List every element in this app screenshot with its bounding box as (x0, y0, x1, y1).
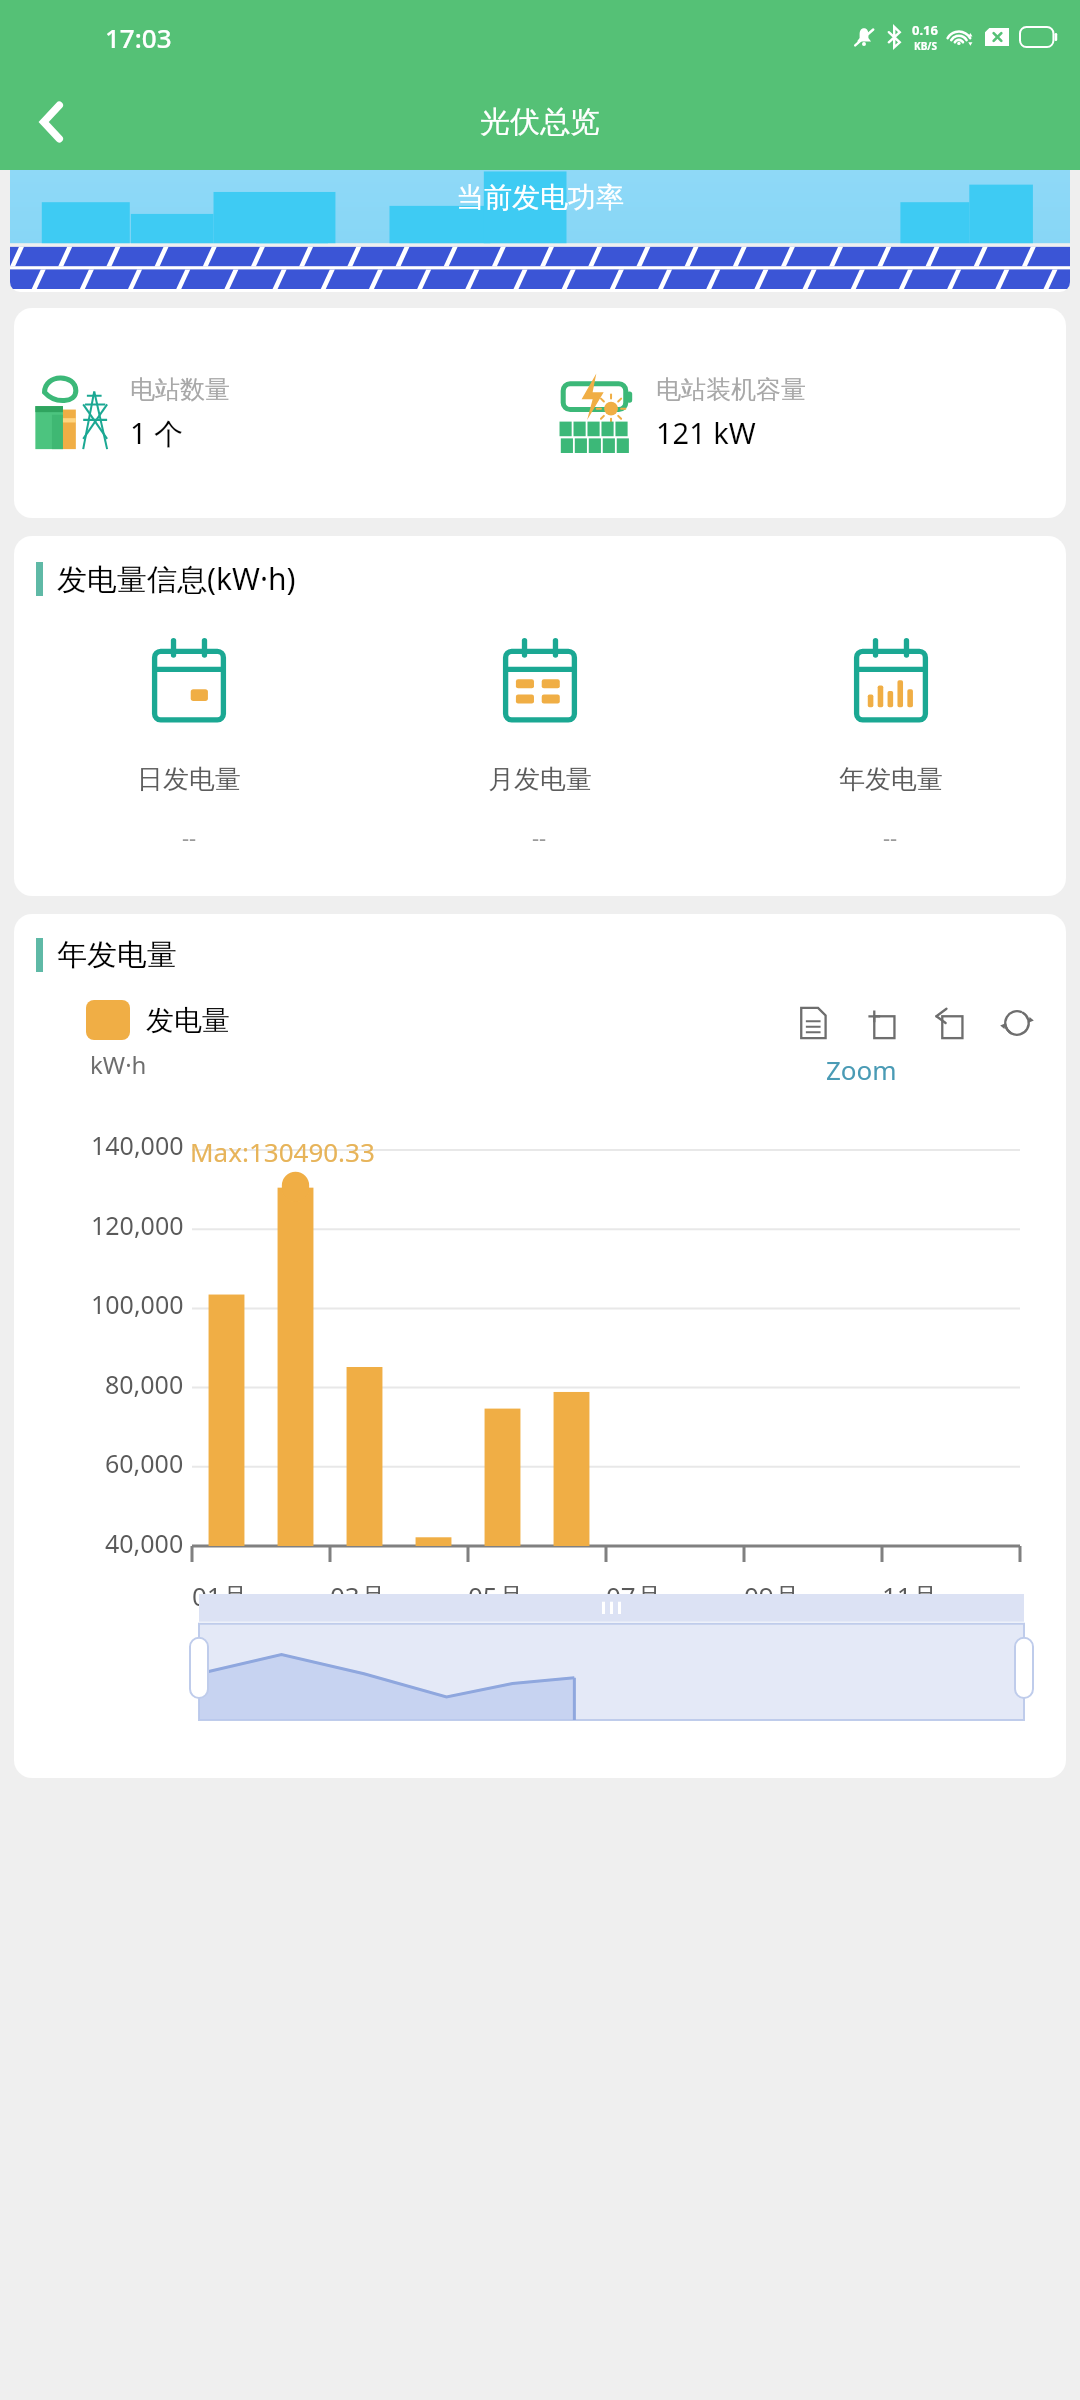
staticText: 年发电量 (839, 763, 943, 796)
staticText: 03月 (330, 1578, 386, 1614)
staticText: 40,000 (105, 1526, 184, 1560)
staticText: 60,000 (105, 1446, 184, 1480)
button[interactable]: Zoom reset (926, 1000, 972, 1046)
button[interactable]: Zoom in (858, 1000, 904, 1046)
staticText: -- (532, 822, 547, 852)
staticText: 发电量 (146, 1003, 230, 1038)
staticText: -- (182, 822, 197, 852)
staticText: Zoom (826, 1052, 897, 1087)
staticText: 07月 (606, 1578, 662, 1614)
staticText: KB/S (914, 39, 937, 53)
staticText: 日发电量 (137, 763, 241, 796)
button[interactable]: 日发电量 (14, 637, 364, 852)
staticText: 05月 (468, 1578, 524, 1614)
staticText: 1 个 (130, 413, 184, 453)
staticText: 0.16 (912, 21, 938, 39)
staticText: 光伏总览 (480, 103, 600, 141)
staticText: 电站装机容量 (656, 374, 806, 405)
staticText: 月发电量 (488, 763, 592, 796)
staticText: 11月 (882, 1578, 938, 1614)
staticText: 121 kW (656, 413, 756, 452)
button[interactable]: 月发电量 (364, 637, 715, 852)
button[interactable]: Back (20, 90, 84, 154)
button[interactable]: 电站数量 (14, 308, 540, 518)
button[interactable]: Export data (790, 1000, 836, 1046)
staticText: 电站数量 (130, 374, 230, 405)
staticText: 发电量信息(kW·h) (57, 558, 296, 599)
staticText: 09月 (744, 1578, 800, 1614)
staticText: 当前发电功率 (456, 180, 624, 215)
staticText: 120,000 (91, 1208, 184, 1242)
button[interactable]: Refresh (994, 1000, 1040, 1046)
button[interactable]: 电站装机容量 (540, 308, 1066, 518)
staticText: -- (883, 822, 898, 852)
staticText: 01月 (192, 1578, 248, 1614)
staticText: 17:03 (105, 20, 172, 55)
staticText: Max:130490.33 (190, 1134, 375, 1169)
staticText: 80,000 (105, 1367, 184, 1401)
staticText: 100,000 (91, 1287, 184, 1321)
staticText: 140,000 (91, 1128, 184, 1162)
staticText: kW·h (90, 1048, 147, 1081)
button[interactable]: 年发电量 (715, 637, 1066, 852)
staticText: 年发电量 (57, 936, 177, 974)
